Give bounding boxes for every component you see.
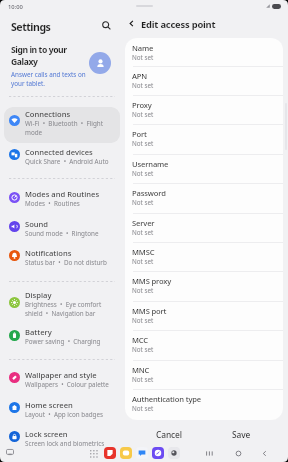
staticText: MNC [132, 365, 150, 375]
staticText: Sign in to your Galaxy [11, 44, 67, 68]
staticText: Save [232, 429, 251, 440]
button[interactable]: Lock screen [25, 429, 122, 448]
staticText: Home screen [25, 400, 73, 410]
staticText: Connections [25, 109, 71, 119]
staticText: Lock screen [25, 429, 68, 439]
staticText: Name [132, 43, 154, 53]
staticText: Not set [132, 81, 154, 90]
staticText: Not set [132, 316, 154, 325]
staticText: Not set [132, 228, 154, 237]
staticText: Cancel [156, 429, 182, 440]
staticText: Port [132, 129, 147, 139]
staticText: Modes • Routines [25, 199, 80, 208]
staticText: Not set [132, 198, 154, 207]
staticText: Modes and Routines [25, 189, 100, 199]
staticText: Not set [132, 404, 154, 413]
button[interactable]: App [168, 447, 180, 459]
button[interactable]: App [104, 447, 116, 459]
staticText: Not set [132, 169, 154, 178]
button[interactable]: Back [257, 446, 271, 460]
staticText: Server [132, 218, 155, 228]
button[interactable]: Authentication type [125, 389, 283, 418]
staticText: MCC [132, 335, 149, 345]
staticText: Power saving • Charging [25, 337, 101, 346]
staticText: Screen lock and biometrics [25, 439, 105, 448]
staticText: Layout • App icon badges [25, 410, 104, 419]
staticText: Display [25, 290, 52, 300]
staticText: Not set [132, 110, 154, 119]
button[interactable]: Display [25, 290, 122, 317]
staticText: Not set [132, 257, 154, 266]
button[interactable]: Server [125, 213, 283, 242]
staticText: Answer calls and texts on your tablet. [11, 70, 86, 88]
staticText: Sound mode • Ringtone [25, 229, 99, 238]
staticText: Wi-Fi • Bluetooth • Flight mode [25, 119, 104, 136]
staticText: Brightness • Eye comfort shield • Naviga… [25, 300, 102, 317]
button[interactable]: Home screen [25, 400, 122, 419]
staticText: Not set [132, 375, 154, 384]
button[interactable]: Save [220, 425, 262, 444]
staticText: Status bar • Do not disturb [25, 258, 107, 267]
button[interactable]: Sound [25, 219, 122, 238]
button[interactable]: Password [125, 183, 283, 212]
button[interactable]: MCC [125, 330, 283, 359]
button[interactable]: MMSC [125, 242, 283, 271]
button[interactable]: App [120, 447, 132, 459]
staticText: Proxy [132, 100, 152, 110]
button[interactable]: Back [124, 16, 138, 30]
button[interactable]: Battery [25, 327, 122, 346]
staticText: Not set [132, 345, 154, 354]
staticText: Username [132, 159, 169, 169]
staticText: Wallpapers • Colour palette [25, 380, 109, 389]
staticText: Connected devices [25, 147, 93, 157]
button[interactable]: Recents [202, 446, 216, 460]
staticText: MMS proxy [132, 276, 172, 286]
staticText: Quick Share • Android Auto [25, 157, 109, 166]
staticText: Password [132, 188, 166, 198]
button[interactable]: Connections [25, 109, 122, 136]
staticText: MMSC [132, 247, 155, 257]
button[interactable]: Username [125, 154, 283, 183]
button[interactable]: MMS port [125, 301, 283, 330]
staticText: Edit access point [141, 18, 216, 31]
button[interactable]: Modes and Routines [25, 189, 122, 208]
staticText: MMS port [132, 306, 167, 316]
button[interactable]: App [152, 447, 164, 459]
staticText: Sound [25, 219, 49, 229]
button[interactable]: Connected devices [25, 147, 122, 166]
staticText: Not set [132, 53, 154, 62]
staticText: Wallpaper and style [25, 370, 97, 380]
staticText: Notifications [25, 248, 72, 258]
button[interactable]: Port [125, 124, 283, 153]
staticText: Battery [25, 327, 52, 337]
button[interactable]: Notifications [25, 248, 122, 267]
button[interactable]: Home [231, 446, 245, 460]
button[interactable]: Search [98, 17, 115, 34]
staticText: Not set [132, 139, 154, 148]
button[interactable]: Keyboard [5, 447, 15, 457]
button[interactable]: App [136, 447, 148, 459]
button[interactable]: APN [125, 66, 283, 95]
button[interactable]: MNC [125, 360, 283, 389]
staticText: APN [132, 71, 148, 81]
button[interactable]: Sign in to your Galaxy [11, 44, 91, 88]
button[interactable]: Name [125, 38, 283, 66]
staticText: 10:00 [8, 3, 23, 11]
button[interactable] [4, 107, 120, 143]
staticText: Authentication type [132, 394, 202, 404]
button[interactable]: Cancel [145, 425, 193, 444]
button[interactable]: All apps [88, 448, 99, 459]
button[interactable]: Proxy [125, 95, 283, 124]
button[interactable]: MMS proxy [125, 271, 283, 300]
button[interactable]: Wallpaper and style [25, 370, 122, 389]
staticText: Not set [132, 286, 154, 295]
staticText: Settings [11, 20, 51, 34]
